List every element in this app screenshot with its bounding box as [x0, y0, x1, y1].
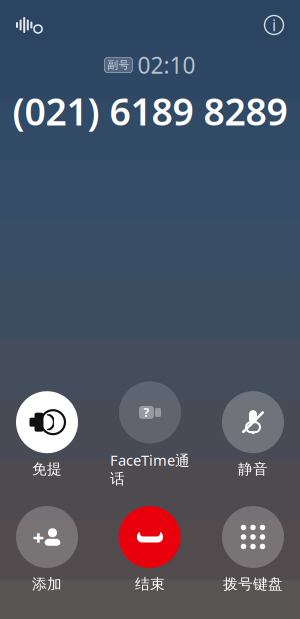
staticText: 拨号键盘 [223, 575, 283, 593]
staticText: 添加 [32, 575, 62, 593]
staticText: 02:10 [137, 50, 195, 80]
button[interactable]: Keypad [206, 506, 299, 593]
staticText: FaceTime通话 [110, 450, 190, 488]
button[interactable]: Mute [206, 391, 299, 478]
button[interactable]: Audio source [12, 10, 46, 40]
staticText: 结束 [135, 575, 165, 593]
staticText: 免提 [32, 460, 62, 478]
staticText: (021) 6189 8289 [12, 86, 287, 136]
staticText: 副号 [107, 58, 129, 72]
button[interactable]: FaceTime [103, 381, 196, 488]
button[interactable]: Call info [260, 11, 288, 39]
button[interactable]: End call [103, 506, 196, 593]
staticText: 静音 [238, 460, 268, 478]
button[interactable]: Add call [0, 506, 93, 593]
button[interactable]: Speaker [0, 391, 93, 478]
staticText: ? [143, 404, 149, 420]
staticText: + [32, 524, 44, 550]
staticText: i [272, 14, 276, 36]
